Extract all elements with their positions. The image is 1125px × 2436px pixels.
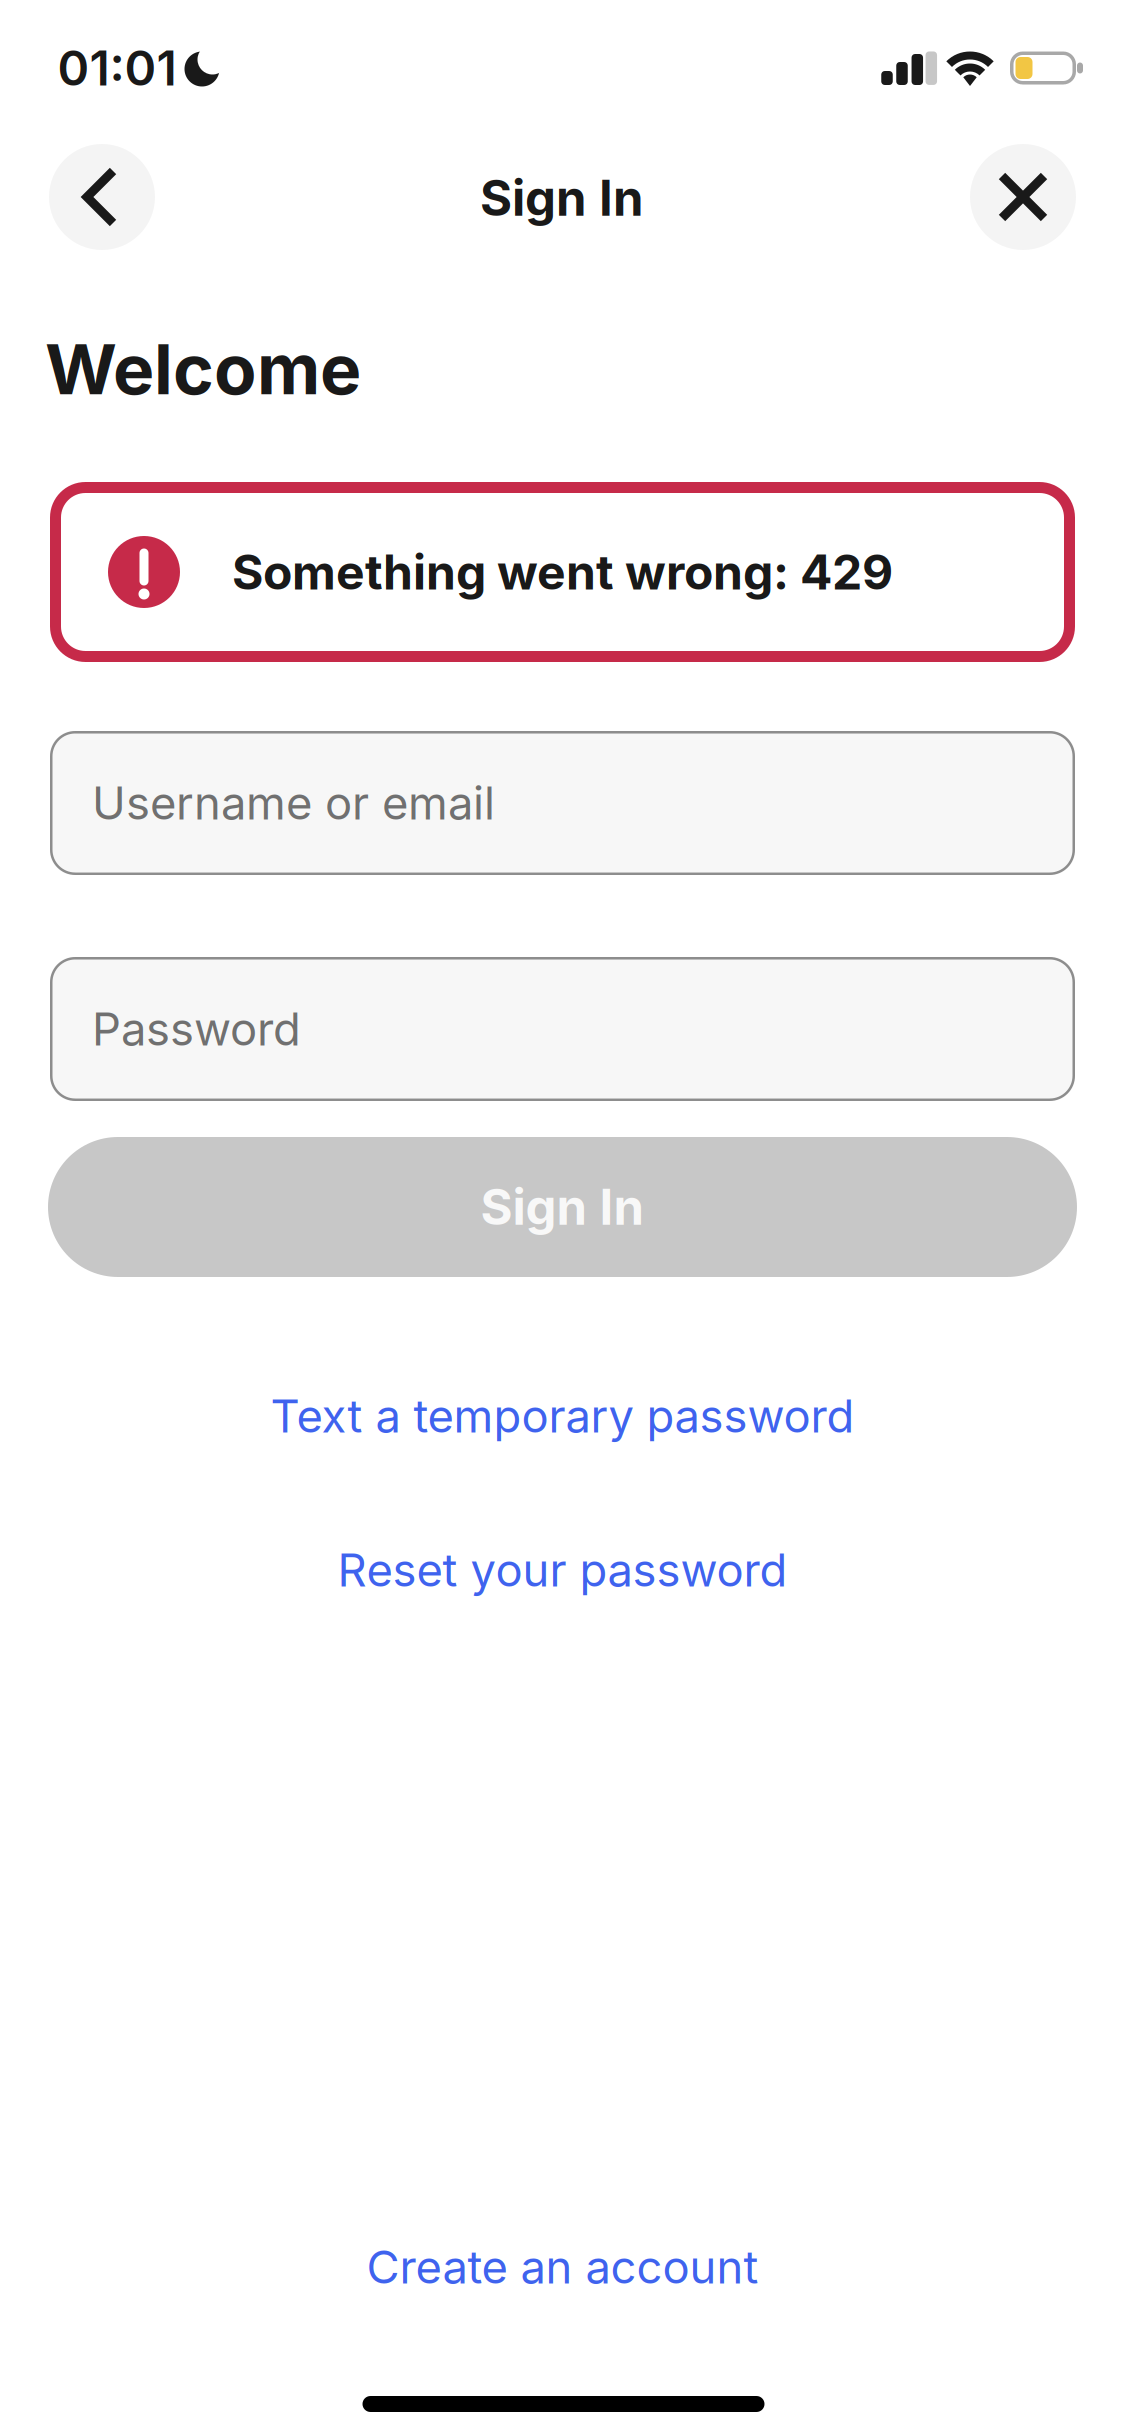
staticText: Welcome [45, 327, 361, 411]
staticText: Password [92, 1002, 301, 1056]
staticText: 01:01 [57, 39, 176, 97]
button[interactable]: Text a temporary password [270, 1389, 854, 1443]
button[interactable]: Reset your password [337, 1543, 787, 1597]
button[interactable]: Create an account [366, 2240, 758, 2294]
staticText: Create an account [366, 2240, 758, 2294]
button[interactable]: Back [49, 144, 155, 250]
staticText: Reset your password [337, 1543, 787, 1597]
staticText: Text a temporary password [270, 1389, 854, 1443]
button[interactable]: Close [970, 144, 1076, 250]
staticText: Username or email [92, 776, 495, 830]
button[interactable]: Sign In [48, 1137, 1077, 1277]
staticText: Something went wrong: 429 [232, 543, 893, 601]
staticText: Sign In [480, 1177, 644, 1237]
staticText: Sign In [480, 168, 644, 228]
